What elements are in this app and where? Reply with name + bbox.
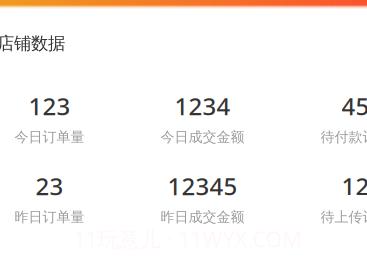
staticText: 店铺数据	[0, 33, 65, 54]
staticText: 待上传订单	[320, 208, 367, 226]
staticText: 1234	[174, 90, 230, 122]
button[interactable]: 1234	[0, 0, 367, 258]
staticText: 今日订单量	[14, 128, 84, 146]
button[interactable]: 12345	[0, 0, 367, 258]
staticText: 123	[28, 90, 70, 122]
staticText: 23	[35, 170, 63, 202]
button[interactable]: 45	[0, 0, 367, 258]
button[interactable]: 123	[0, 0, 367, 258]
staticText: 待付款订单	[320, 128, 367, 146]
staticText: 昨日成交金额	[160, 208, 244, 226]
staticText: 12	[341, 170, 367, 202]
staticText: 45	[341, 90, 367, 122]
button[interactable]: 23	[0, 0, 367, 258]
button[interactable]: 12	[0, 0, 367, 258]
staticText: 12345	[167, 170, 237, 202]
staticText: 今日成交金额	[160, 128, 244, 146]
staticText: 昨日订单量	[14, 208, 84, 226]
